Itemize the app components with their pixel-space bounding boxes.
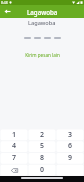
staticText: 6 [68, 141, 73, 151]
button[interactable]: 4 [0, 140, 28, 152]
button[interactable]: 2 [28, 129, 56, 140]
staticText: Lagawoba [27, 8, 58, 16]
button[interactable]: 8 [28, 152, 56, 164]
button[interactable]: 1 [0, 129, 28, 140]
button[interactable]: 5 [28, 140, 56, 152]
button[interactable]: 9 [56, 152, 84, 164]
staticText: 9 [68, 153, 73, 163]
button[interactable]: 6 [56, 140, 84, 152]
staticText: Lagawoba [28, 19, 56, 27]
button[interactable]: 3 [56, 129, 84, 140]
button[interactable]: Back [2, 6, 13, 17]
staticText: 3 [68, 130, 73, 140]
staticText: 4 [12, 141, 17, 151]
button[interactable]: 0 [28, 164, 56, 176]
staticText: 8 [40, 153, 45, 163]
staticText: 1 [12, 130, 17, 140]
button[interactable]: Backspace [0, 164, 28, 176]
staticText: 7 [12, 153, 17, 163]
staticText: 8:48 [1, 0, 8, 5]
staticText: 5 [40, 141, 45, 151]
staticText: 0 [40, 165, 45, 175]
staticText: Kirim pesan lain [25, 52, 60, 58]
button[interactable]: 7 [0, 152, 28, 164]
button[interactable]: Kirim pesan lain [23, 51, 62, 59]
staticText: 2 [40, 130, 45, 140]
